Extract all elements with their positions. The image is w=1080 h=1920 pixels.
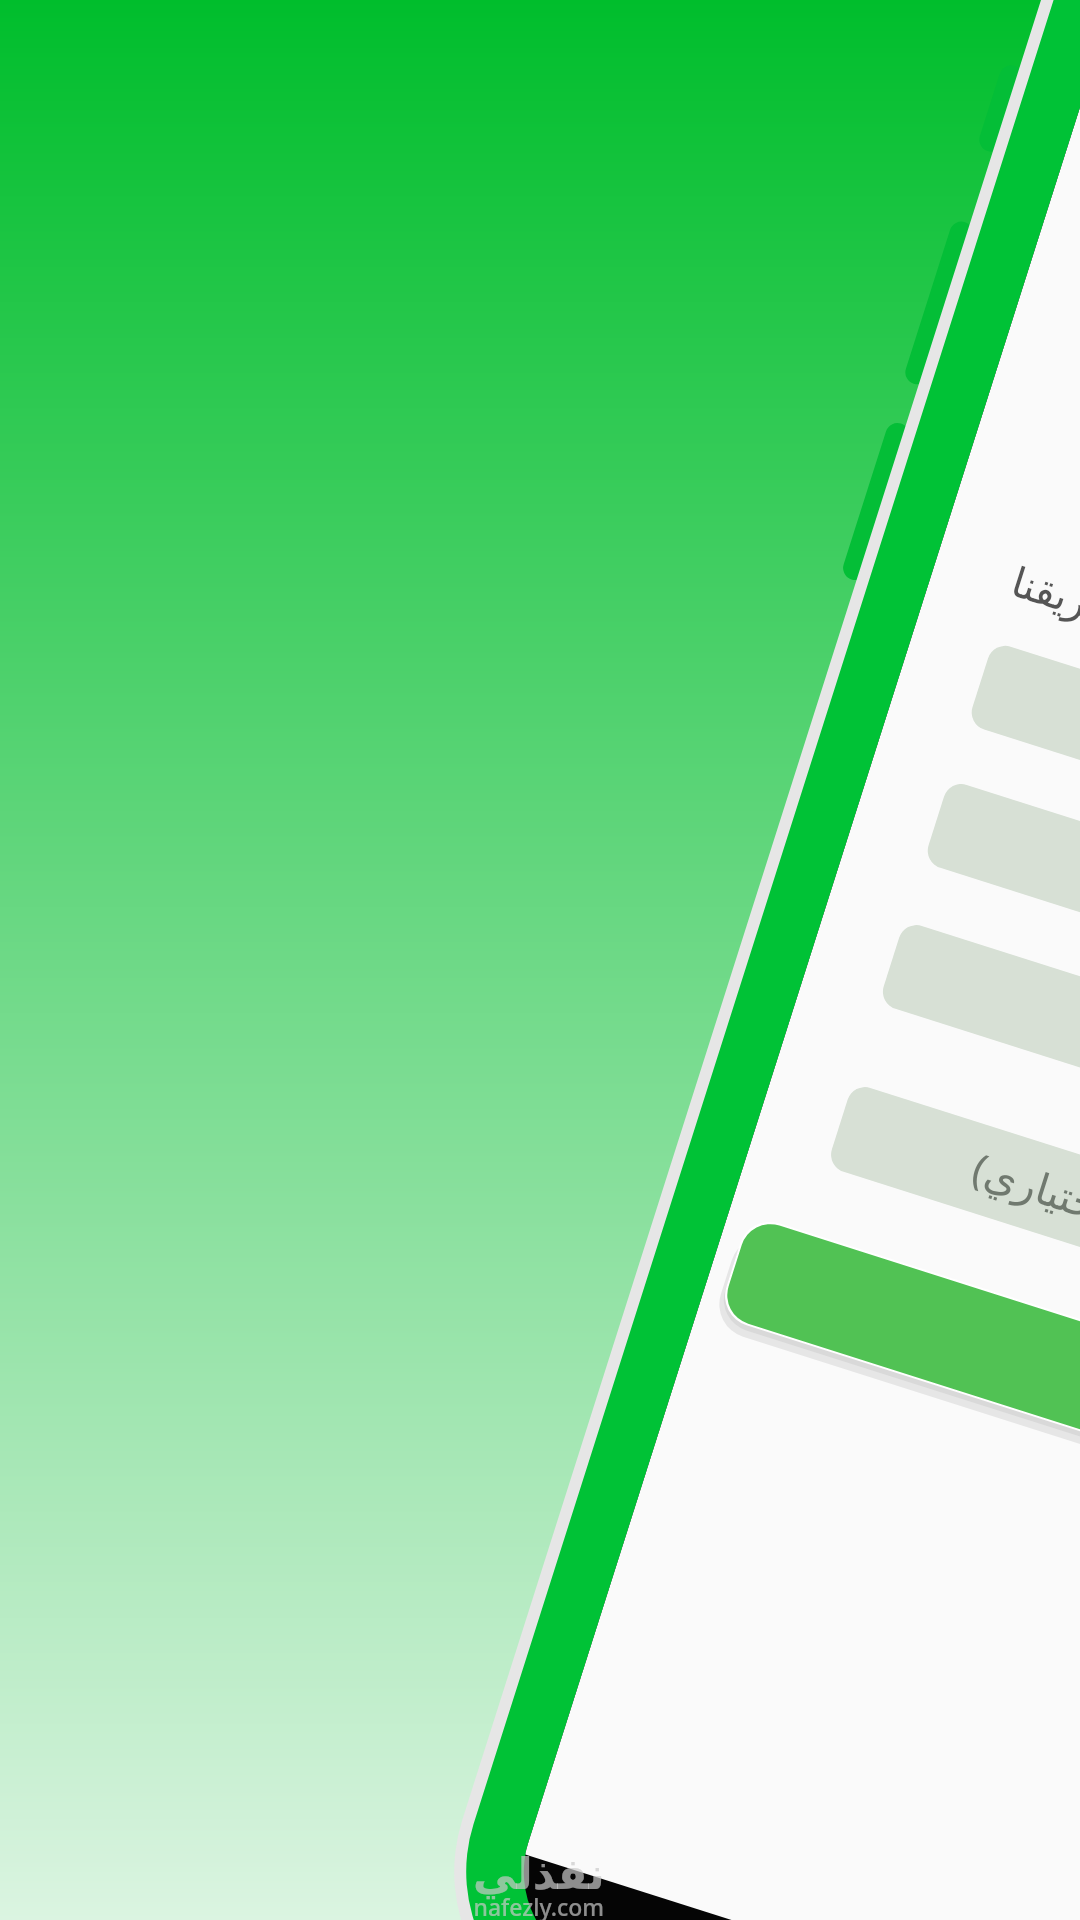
button[interactable]: Email field — [819, 780, 1080, 1164]
button[interactable]: Phone number field — [775, 921, 1080, 1305]
button[interactable]: Full name field — [863, 642, 1080, 1026]
button[interactable]: Message field, optional — [723, 1083, 1080, 1467]
button[interactable]: Send — [557, 1198, 1080, 1724]
